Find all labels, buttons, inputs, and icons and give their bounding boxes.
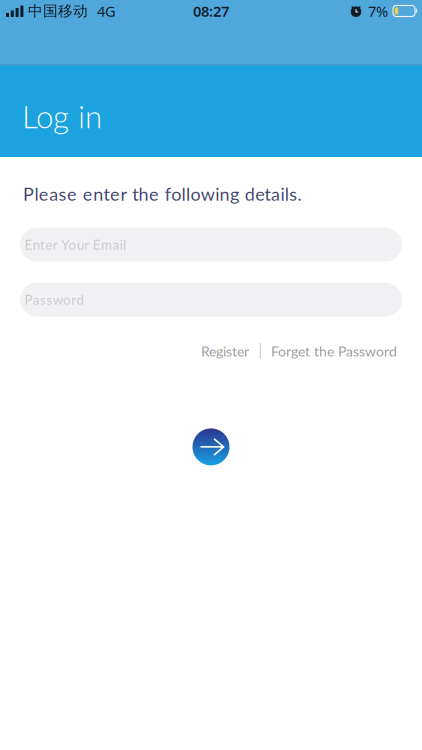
button[interactable]: Log in <box>192 428 229 465</box>
staticText: │ <box>256 343 264 358</box>
button[interactable]: Register <box>201 343 249 359</box>
staticText: Password <box>24 292 84 308</box>
button[interactable]: Password <box>0 283 422 317</box>
staticText: Forget the Password <box>271 343 397 359</box>
staticText: Register <box>201 343 249 359</box>
staticText: 08:27 <box>193 1 229 21</box>
staticText: Please enter the following details. <box>23 183 302 205</box>
staticText: 7% <box>368 1 388 21</box>
staticText: 4G <box>97 1 116 21</box>
button[interactable]: Enter Your Email <box>0 228 422 262</box>
staticText: Enter Your Email <box>24 237 126 253</box>
staticText: 中国移动 <box>28 2 88 20</box>
staticText: Log in <box>22 97 102 135</box>
button[interactable]: Forget the Password <box>271 343 397 359</box>
